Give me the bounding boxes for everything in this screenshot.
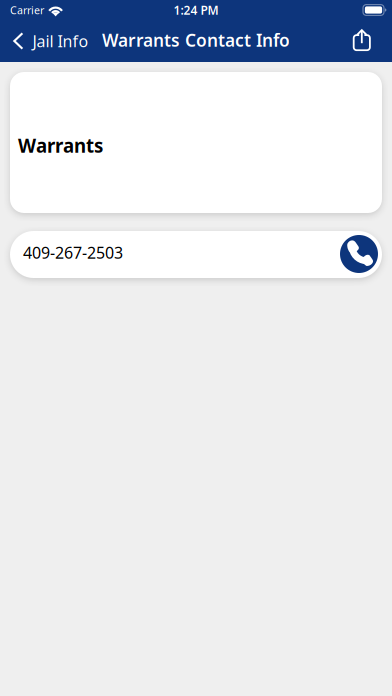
staticText: 1:24 PM bbox=[173, 2, 218, 18]
button[interactable]: Share bbox=[343, 24, 392, 62]
button[interactable]: Jail Info bbox=[0, 24, 97, 62]
staticText: Jail Info bbox=[33, 30, 89, 52]
button[interactable]: 409-267-2503 bbox=[0, 231, 392, 278]
staticText: Warrants Contact Info bbox=[102, 28, 290, 51]
staticText: 409-267-2503 bbox=[23, 242, 123, 263]
staticText: Warrants bbox=[18, 133, 103, 158]
staticText: Carrier bbox=[10, 3, 44, 17]
